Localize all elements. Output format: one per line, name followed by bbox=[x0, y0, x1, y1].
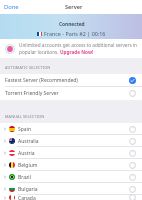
staticText: France - Paris #2 | 00:16 bbox=[44, 30, 106, 37]
button[interactable]: Brazil bbox=[0, 171, 142, 183]
staticText: Canada bbox=[18, 195, 36, 200]
button[interactable]: Canada bbox=[0, 195, 142, 200]
staticText: Done bbox=[4, 3, 19, 11]
staticText: Upgrade Now! bbox=[60, 49, 94, 55]
staticText: Australia bbox=[18, 138, 39, 145]
button[interactable]: Torrent Friendly Server bbox=[0, 87, 142, 100]
button[interactable]: Spain bbox=[0, 123, 142, 135]
staticText: Fastest Server (Recommended) bbox=[5, 77, 78, 84]
button[interactable]: Done bbox=[0, 1, 23, 13]
button[interactable]: Fastest Server (Recommended) bbox=[0, 74, 142, 87]
staticText: Belgium bbox=[18, 162, 38, 169]
staticText: Torrent Friendly Server bbox=[5, 90, 59, 97]
button[interactable]: Bulgaria bbox=[0, 183, 142, 195]
other: Selected bbox=[129, 77, 136, 84]
button[interactable]: Unlimited accounts get access to additio… bbox=[0, 39, 142, 58]
staticText: Server bbox=[65, 3, 83, 11]
staticText: Unlimited accounts get access to additio… bbox=[19, 42, 138, 48]
staticText: Bulgaria bbox=[18, 186, 38, 193]
button[interactable]: Australia bbox=[0, 135, 142, 147]
staticText: Connected bbox=[59, 21, 85, 28]
staticText: AUTOMATIC SELECTION bbox=[5, 65, 51, 70]
staticText: Austria bbox=[18, 150, 35, 157]
staticText: Spain bbox=[18, 126, 32, 133]
staticText: popular locations. bbox=[19, 49, 60, 55]
button[interactable]: Austria bbox=[0, 147, 142, 159]
staticText: Brazil bbox=[18, 174, 31, 181]
staticText: MANUAL SELECTION bbox=[5, 114, 45, 119]
button[interactable]: Belgium bbox=[0, 159, 142, 171]
